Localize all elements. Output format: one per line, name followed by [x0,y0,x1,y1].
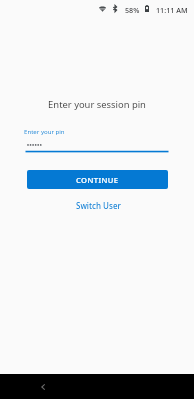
staticText: 58% [125,5,140,15]
staticText: CONTINUE [76,175,119,185]
button[interactable]: Back [33,377,53,397]
staticText: Enter your pin [24,127,65,135]
staticText: 11:11 AM [156,5,188,15]
button[interactable]: CONTINUE [27,170,168,189]
staticText: Switch User [76,200,121,211]
button[interactable]: Enter your pin [25,124,168,153]
staticText: Enter your session pin [0,98,194,111]
button[interactable]: Switch User [68,198,129,213]
